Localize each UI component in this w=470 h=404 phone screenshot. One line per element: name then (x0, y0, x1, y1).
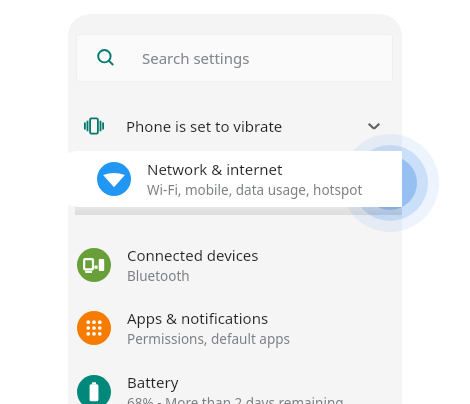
staticText: 68% - More than 2 days remaining (127, 394, 344, 404)
staticText: Connected devices (127, 245, 259, 265)
staticText: Search settings (142, 48, 250, 68)
button[interactable]: Search settings (76, 34, 393, 82)
button[interactable]: Network & internet (51, 151, 402, 207)
button[interactable]: Apps & notifications (68, 299, 402, 357)
staticText: Battery (127, 372, 179, 392)
staticText: Bluetooth (127, 267, 190, 285)
staticText: Network & internet (147, 159, 283, 179)
button[interactable]: Battery (68, 363, 402, 404)
button[interactable]: Connected devices (68, 236, 402, 294)
other: Expand (364, 116, 384, 136)
staticText: Phone is set to vibrate (126, 116, 283, 136)
staticText: Wi-Fi, mobile, data usage, hotspot (147, 181, 363, 199)
button[interactable]: Phone is set to vibrate (68, 102, 402, 150)
staticText: Apps & notifications (127, 308, 269, 328)
staticText: Permissions, default apps (127, 330, 290, 348)
